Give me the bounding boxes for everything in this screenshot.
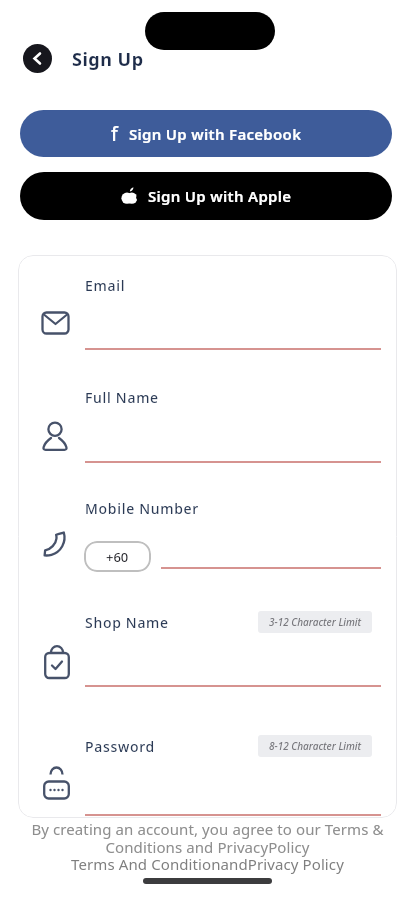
staticText: Sign Up: [72, 47, 144, 72]
staticText: Sign Up with Facebook: [129, 124, 302, 144]
staticText: f: [111, 121, 118, 147]
staticText: +60: [106, 548, 129, 566]
button[interactable]: Terms And ConditionandPrivacy Policy: [0, 854, 415, 874]
button[interactable]: [23, 44, 52, 73]
button[interactable]: +60: [84, 541, 151, 572]
staticText: Full Name: [85, 388, 159, 407]
button[interactable]: f: [20, 110, 392, 157]
staticText: 8-12 Character Limit: [269, 739, 362, 753]
staticText: Mobile Number: [85, 499, 199, 518]
staticText: By creating an account, you agree to our…: [0, 819, 415, 857]
button[interactable]: Sign Up with Apple: [20, 172, 392, 220]
staticText: Password: [85, 737, 155, 756]
staticText: 3-12 Character Limit: [269, 615, 362, 629]
staticText: Sign Up with Apple: [148, 186, 292, 206]
staticText: Shop Name: [85, 613, 169, 632]
staticText: Email: [85, 276, 126, 295]
